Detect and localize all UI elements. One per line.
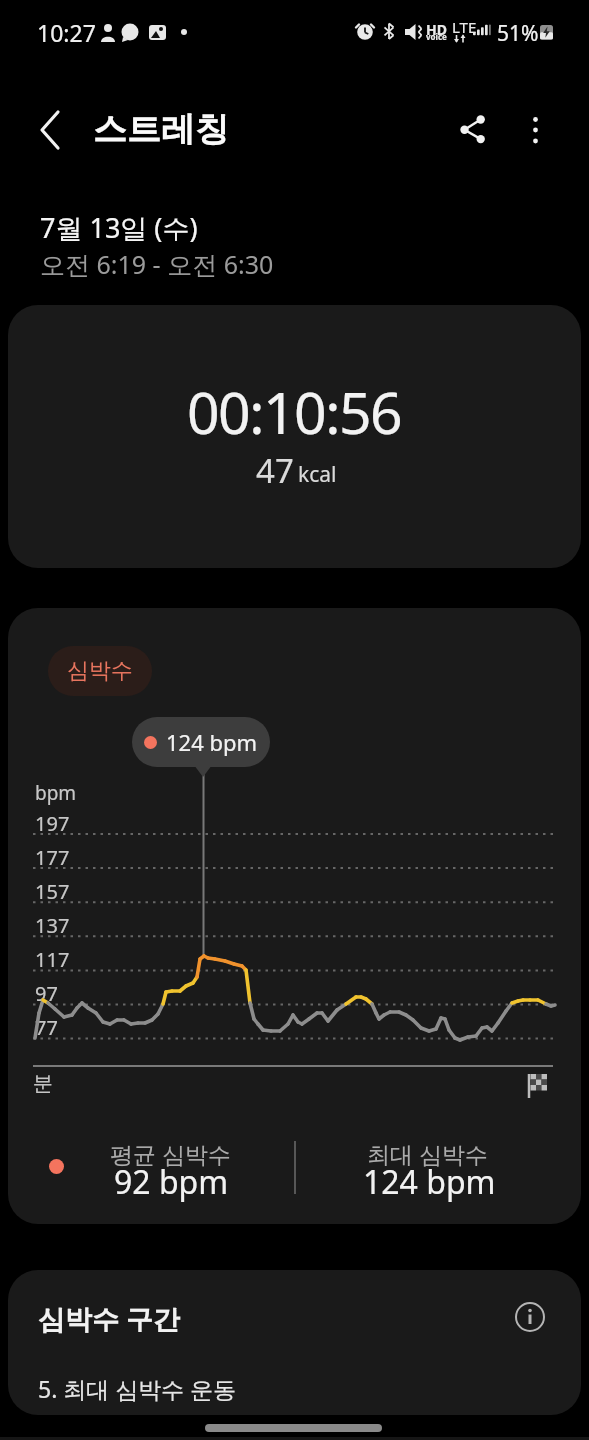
staticText: 00:10:56 bbox=[187, 373, 402, 451]
button[interactable] bbox=[445, 102, 501, 158]
staticText: LTE bbox=[452, 17, 477, 37]
staticText: 92 bpm bbox=[114, 1160, 229, 1204]
staticText: 51% bbox=[497, 19, 539, 48]
button[interactable] bbox=[8, 305, 581, 568]
staticText: bpm bbox=[35, 780, 77, 806]
staticText: voice bbox=[426, 31, 447, 42]
staticText: 평균 심박수 bbox=[110, 1138, 231, 1169]
button[interactable]: 심박수 bbox=[48, 646, 152, 696]
staticText: 최대 심박수 bbox=[367, 1138, 488, 1169]
staticText: 5. 최대 심박수 운동 bbox=[38, 1373, 237, 1404]
staticText: 177 bbox=[35, 844, 70, 871]
button[interactable] bbox=[508, 102, 564, 158]
staticText: 97 bbox=[35, 980, 58, 1007]
staticText: 10:27 bbox=[37, 17, 96, 48]
button[interactable] bbox=[514, 1301, 546, 1333]
staticText: 심박수 구간 bbox=[38, 1300, 181, 1337]
staticText: 47 bbox=[256, 448, 294, 493]
staticText: 124 bpm bbox=[166, 727, 258, 757]
staticText: 117 bbox=[35, 946, 70, 973]
staticText: 157 bbox=[35, 878, 70, 905]
staticText: 심박수 bbox=[67, 657, 133, 685]
button[interactable] bbox=[22, 102, 78, 158]
staticText: 197 bbox=[35, 810, 70, 837]
staticText: 분 bbox=[33, 1071, 53, 1096]
staticText: kcal bbox=[298, 460, 337, 489]
staticText: 124 bpm bbox=[363, 1160, 496, 1204]
staticText: HD bbox=[426, 20, 447, 39]
staticText: 77 bbox=[35, 1014, 58, 1041]
staticText: 오전 6:19 - 오전 6:30 bbox=[40, 247, 274, 281]
staticText: 스트레칭 bbox=[93, 108, 229, 151]
staticText: 7월 13일 (수) bbox=[40, 209, 198, 246]
staticText: 137 bbox=[35, 912, 70, 939]
